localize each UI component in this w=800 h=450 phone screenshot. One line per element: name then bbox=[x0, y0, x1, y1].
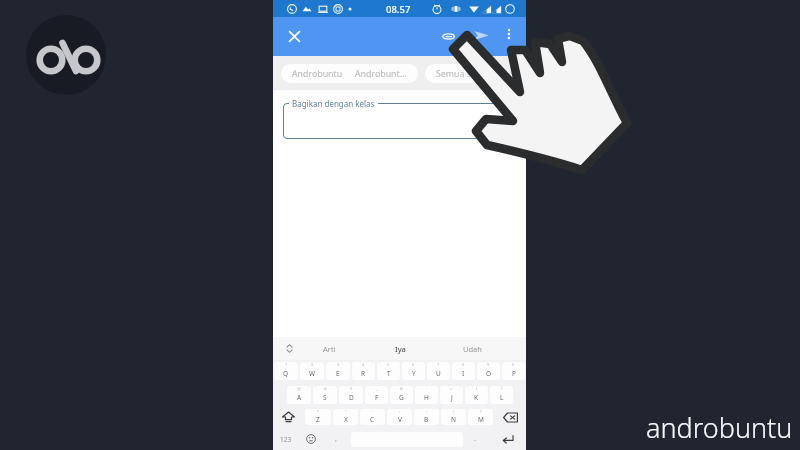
button[interactable]: ; bbox=[414, 409, 439, 425]
staticText: O bbox=[486, 369, 492, 378]
button[interactable]: 6 bbox=[402, 362, 425, 380]
staticText: ' bbox=[372, 409, 373, 414]
staticText: - bbox=[426, 386, 428, 391]
button[interactable]: * bbox=[305, 409, 331, 425]
staticText: W bbox=[309, 369, 316, 378]
staticText: 9 bbox=[487, 362, 490, 367]
button[interactable]: Iya bbox=[369, 337, 431, 360]
button[interactable]: Close bbox=[282, 24, 306, 48]
button[interactable]: Arti bbox=[293, 337, 365, 360]
staticText: N bbox=[451, 415, 456, 424]
button[interactable]: - bbox=[415, 386, 438, 404]
staticText: C bbox=[370, 415, 375, 424]
staticText: ! bbox=[453, 409, 455, 414]
staticText: : bbox=[399, 409, 401, 414]
button[interactable]: _ bbox=[365, 386, 388, 404]
staticText: Z bbox=[316, 415, 320, 424]
staticText: Iya bbox=[395, 344, 406, 354]
button[interactable]: 8 bbox=[452, 362, 475, 380]
staticText: 08.57 bbox=[386, 3, 411, 16]
button[interactable]: Udah bbox=[436, 337, 508, 360]
button[interactable]: Semua siswa bbox=[425, 64, 501, 83]
staticText: , bbox=[335, 434, 337, 444]
staticText: V bbox=[398, 415, 402, 424]
staticText: # bbox=[324, 386, 327, 391]
button[interactable]: More options bbox=[499, 24, 519, 44]
staticText: Arti bbox=[323, 344, 336, 354]
staticText: 1 bbox=[285, 362, 288, 367]
staticText: ( bbox=[476, 386, 478, 391]
staticText: M bbox=[478, 415, 484, 424]
staticText: F bbox=[375, 393, 379, 402]
button[interactable]: 3 bbox=[326, 362, 350, 380]
button[interactable]: More suggestions bbox=[277, 337, 301, 360]
button[interactable]: @ bbox=[287, 386, 311, 404]
button[interactable]: ) bbox=[490, 386, 513, 404]
staticText: 8 bbox=[462, 362, 465, 367]
button[interactable]: Send bbox=[469, 23, 493, 47]
button[interactable]: 9 bbox=[477, 362, 500, 380]
button[interactable]: 123 bbox=[274, 428, 297, 450]
staticText: H bbox=[424, 393, 429, 402]
staticText: ) bbox=[501, 386, 503, 391]
button[interactable]: 7 bbox=[427, 362, 450, 380]
button[interactable] bbox=[283, 103, 516, 139]
staticText: androbuntu bbox=[646, 409, 793, 446]
button[interactable]: " bbox=[333, 409, 358, 425]
staticText: Udah bbox=[463, 344, 482, 354]
other: Androbuntu logo bbox=[16, 5, 116, 105]
button[interactable]: Androbuntu bbox=[281, 64, 418, 83]
staticText: L bbox=[500, 393, 504, 402]
button[interactable]: Emoji bbox=[299, 428, 322, 450]
button[interactable]: ? bbox=[468, 409, 493, 425]
button[interactable]: 0 bbox=[502, 362, 525, 380]
staticText: D bbox=[349, 393, 354, 402]
button[interactable]: Enter bbox=[495, 428, 521, 450]
staticText: 6 bbox=[412, 362, 415, 367]
button[interactable]: 5 bbox=[377, 362, 400, 380]
staticText: Q bbox=[283, 369, 289, 378]
staticText: P bbox=[512, 369, 516, 378]
staticText: + bbox=[450, 386, 453, 391]
button[interactable]: ! bbox=[441, 409, 466, 425]
staticText: * bbox=[317, 409, 320, 414]
staticText: 4 bbox=[362, 362, 365, 367]
staticText: . bbox=[474, 434, 476, 444]
staticText: Bagikan dengan kelas bbox=[292, 98, 375, 109]
button[interactable]: 4 bbox=[352, 362, 375, 380]
staticText: $ bbox=[350, 386, 353, 391]
staticText: B bbox=[424, 415, 429, 424]
staticText: @ bbox=[297, 386, 301, 391]
staticText: T bbox=[387, 369, 391, 378]
button[interactable]: , bbox=[325, 428, 347, 450]
button[interactable]: Attach file bbox=[436, 24, 460, 48]
button[interactable]: 2 bbox=[300, 362, 324, 380]
staticText: X bbox=[344, 415, 348, 424]
staticText: G bbox=[399, 393, 404, 402]
staticText: _ bbox=[376, 386, 378, 391]
staticText: 5 bbox=[387, 362, 390, 367]
button[interactable]: & bbox=[390, 386, 413, 404]
button[interactable]: : bbox=[387, 409, 412, 425]
button[interactable]: 1 bbox=[274, 362, 298, 380]
staticText: Androbuntu bbox=[292, 68, 343, 80]
staticText: Semua siswa bbox=[436, 68, 490, 80]
staticText: S bbox=[323, 393, 327, 402]
staticText: 7 bbox=[437, 362, 440, 367]
button[interactable]: Backspace bbox=[496, 406, 524, 428]
staticText: Androbunt… bbox=[355, 68, 407, 80]
button[interactable]: $ bbox=[339, 386, 363, 404]
staticText: J bbox=[451, 393, 453, 402]
staticText: U bbox=[436, 369, 441, 378]
button[interactable]: + bbox=[440, 386, 463, 404]
button[interactable]: Shift bbox=[275, 406, 302, 428]
staticText: 3 bbox=[337, 362, 340, 367]
button[interactable]: ' bbox=[360, 409, 385, 425]
staticText: A bbox=[297, 393, 302, 402]
staticText: " bbox=[345, 409, 347, 414]
button[interactable]: ( bbox=[465, 386, 488, 404]
staticText: & bbox=[400, 386, 403, 391]
button[interactable]: # bbox=[313, 386, 337, 404]
